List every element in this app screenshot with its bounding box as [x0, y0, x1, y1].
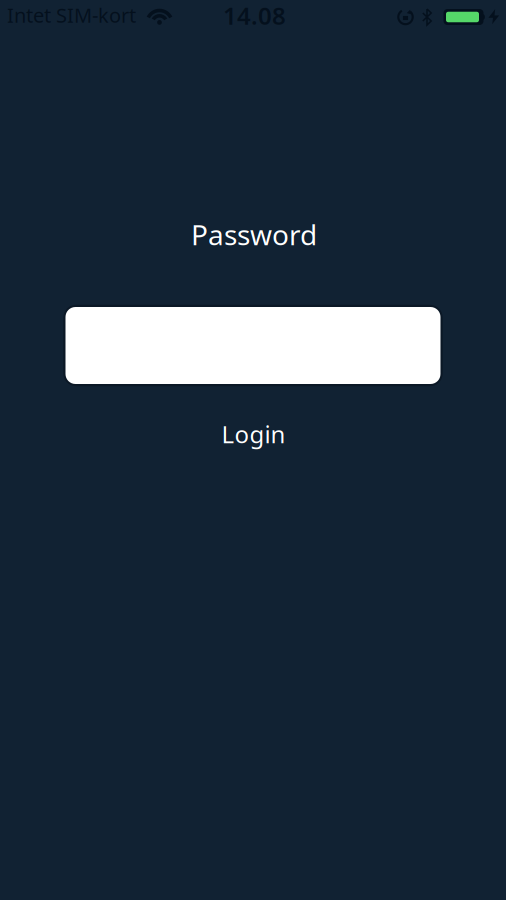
staticText: Login [221, 418, 285, 450]
button[interactable]: Login [221, 418, 285, 450]
button[interactable] [63, 305, 442, 386]
staticText: Intet SIM-kort [7, 2, 136, 28]
staticText: 14.08 [223, 0, 286, 31]
staticText: Password [191, 216, 317, 253]
